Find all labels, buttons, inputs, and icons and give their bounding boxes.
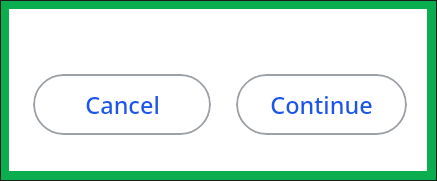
button[interactable]: Cancel — [33, 74, 211, 135]
button[interactable]: Continue — [236, 74, 407, 135]
staticText: Continue — [270, 89, 373, 121]
staticText: Cancel — [85, 89, 160, 121]
